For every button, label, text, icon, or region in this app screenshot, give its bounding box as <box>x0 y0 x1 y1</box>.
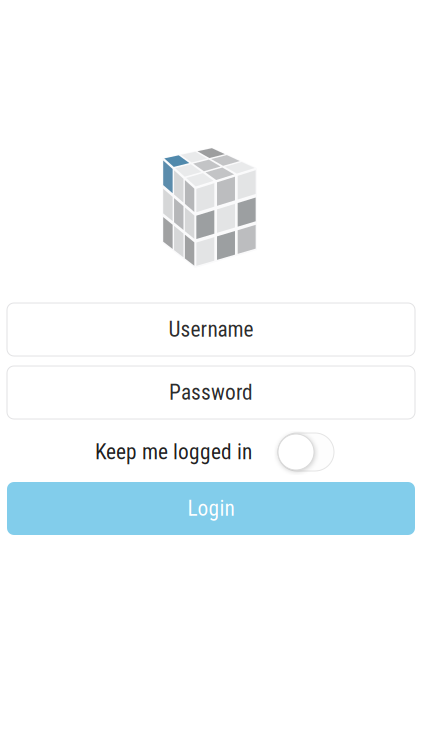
staticText: Password <box>169 380 253 405</box>
button[interactable]: Password <box>7 366 415 419</box>
staticText: Username <box>168 317 253 342</box>
button[interactable]: Username <box>7 303 415 356</box>
staticText: Keep me logged in <box>95 439 252 464</box>
button[interactable]: Login <box>7 482 415 535</box>
staticText: Login <box>187 496 234 521</box>
button[interactable]: Keep me logged in <box>95 433 334 471</box>
